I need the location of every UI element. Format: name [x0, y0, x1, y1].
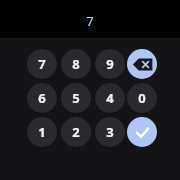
staticText: 1: [38, 123, 46, 141]
button[interactable]: 9: [95, 49, 125, 79]
button[interactable]: Backspace: [127, 49, 157, 79]
button[interactable]: 7: [27, 49, 57, 79]
staticText: 5: [72, 89, 80, 107]
staticText: 9: [106, 55, 114, 73]
staticText: 3: [106, 123, 114, 141]
button[interactable]: 0: [127, 83, 157, 113]
button[interactable]: 5: [61, 83, 91, 113]
button[interactable]: 8: [61, 49, 91, 79]
staticText: 4: [106, 89, 114, 107]
staticText: 8: [72, 55, 80, 73]
staticText: 7: [38, 55, 46, 73]
staticText: 2: [72, 123, 80, 141]
button[interactable]: 3: [95, 117, 125, 147]
button[interactable]: 4: [95, 83, 125, 113]
staticText: 7: [86, 12, 94, 30]
button[interactable]: 1: [27, 117, 57, 147]
staticText: 6: [38, 89, 46, 107]
staticText: 0: [138, 89, 146, 107]
button[interactable]: 6: [27, 83, 57, 113]
button[interactable]: Confirm: [127, 117, 157, 147]
button[interactable]: 2: [61, 117, 91, 147]
